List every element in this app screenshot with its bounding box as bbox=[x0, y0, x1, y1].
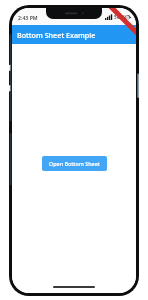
staticText: 5G bbox=[114, 14, 120, 20]
staticText: Open Bottom Sheet bbox=[49, 160, 100, 167]
staticText: Bottom Sheet Example bbox=[17, 30, 96, 40]
staticText: 2:43 PM bbox=[18, 14, 38, 21]
button[interactable]: Open Bottom Sheet bbox=[42, 156, 107, 171]
staticText: DEBUG bbox=[121, 11, 134, 24]
